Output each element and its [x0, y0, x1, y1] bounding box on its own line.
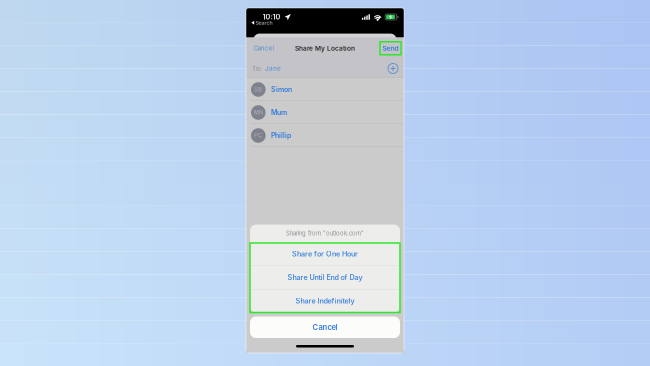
button[interactable]: Cancel: [246, 41, 283, 56]
staticText: Search: [255, 19, 272, 26]
staticText: SB: [254, 86, 262, 93]
staticText: Share for One Hour: [292, 250, 358, 258]
staticText: Share Indefinitely: [295, 297, 354, 305]
button[interactable]: MN: [246, 101, 404, 124]
staticText: Cancel: [253, 44, 274, 52]
button[interactable]: Cancel: [250, 316, 400, 338]
staticText: Sharing from "outlook.com": [286, 230, 364, 237]
staticText: Simon: [271, 85, 292, 94]
staticText: Share My Location: [295, 44, 355, 52]
button[interactable]: PC: [246, 124, 404, 147]
button[interactable]: Share Until End of Day: [250, 266, 400, 289]
staticText: Send: [382, 44, 398, 52]
staticText: Share Until End of Day: [287, 273, 362, 282]
staticText: To:: [252, 65, 262, 72]
button[interactable]: Send: [380, 42, 404, 55]
staticText: Jane: [265, 65, 281, 72]
button[interactable]: Add recipient: [387, 63, 398, 74]
staticText: 10:10: [262, 13, 280, 21]
button[interactable]: Share Indefinitely: [250, 289, 400, 312]
button[interactable]: Share for One Hour: [250, 242, 400, 265]
staticText: MN: [254, 109, 263, 116]
staticText: Mum: [271, 108, 287, 117]
staticText: Cancel: [312, 323, 337, 332]
staticText: Phillip: [271, 131, 291, 140]
button[interactable]: SB: [246, 78, 404, 101]
staticText: PC: [254, 132, 262, 139]
